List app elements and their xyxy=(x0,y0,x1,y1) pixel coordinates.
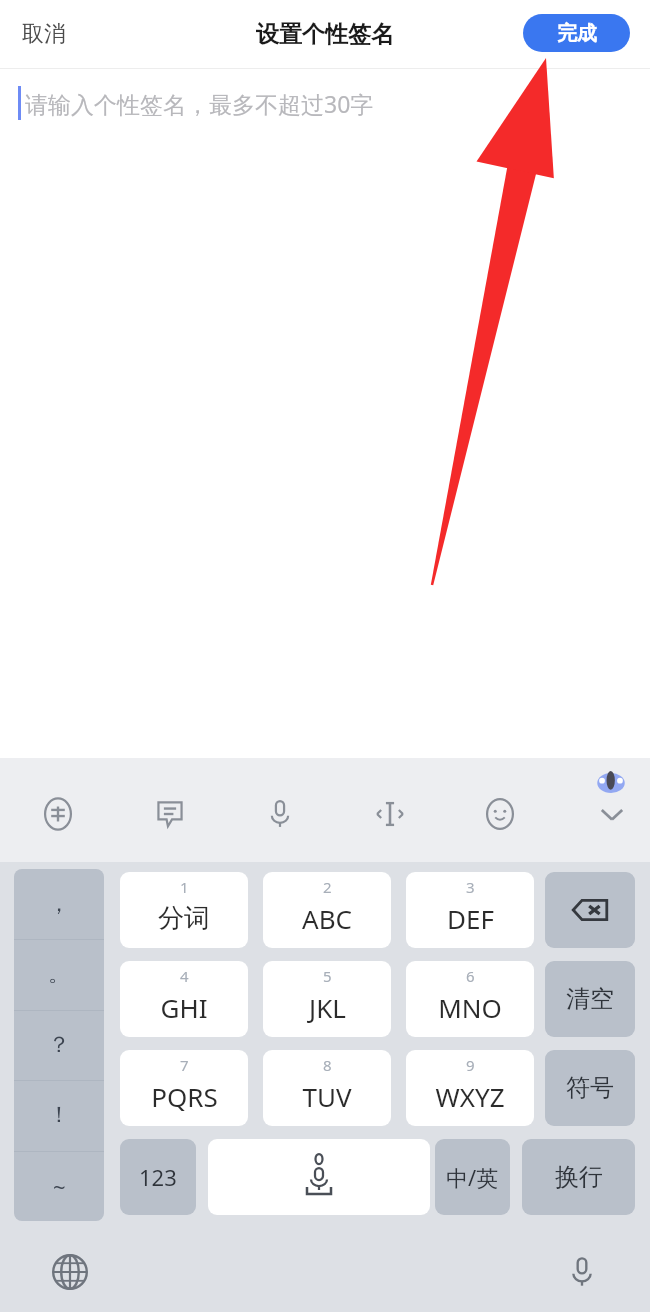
staticText: WXYZ xyxy=(435,1079,505,1114)
button[interactable]: ？ xyxy=(14,1010,104,1080)
button[interactable]: 完成 xyxy=(523,14,630,52)
button[interactable]: 换行 xyxy=(522,1139,635,1215)
button[interactable]: ， xyxy=(14,869,104,939)
staticText: 。 xyxy=(48,960,70,988)
button[interactable]: 2 xyxy=(263,872,391,948)
staticText: DEF xyxy=(447,901,494,936)
staticText: ， xyxy=(48,890,70,918)
button[interactable]: 退格 xyxy=(545,872,635,948)
button[interactable]: 9 xyxy=(406,1050,534,1126)
staticText: 123 xyxy=(139,1162,177,1192)
button[interactable]: 1 xyxy=(120,872,248,948)
staticText: PQRS xyxy=(151,1079,218,1114)
button[interactable]: 语音输入 xyxy=(560,1250,604,1294)
button[interactable]: Hide keyboard xyxy=(586,788,638,840)
button[interactable]: 清空 xyxy=(545,961,635,1037)
staticText: 取消 xyxy=(22,20,66,48)
staticText: JKL xyxy=(309,990,346,1025)
staticText: 8 xyxy=(323,1055,332,1075)
staticText: MNO xyxy=(438,990,502,1025)
staticText: ABC xyxy=(302,901,352,936)
button[interactable]: 3 xyxy=(406,872,534,948)
button[interactable]: 5 xyxy=(263,961,391,1037)
button[interactable]: 。 xyxy=(14,939,104,1009)
button[interactable]: 切换输入法 xyxy=(48,1250,92,1294)
button[interactable]: Handwriting xyxy=(32,788,84,840)
button[interactable]: Assistant xyxy=(595,766,627,798)
button[interactable]: Text tools xyxy=(144,788,196,840)
button[interactable]: 123 xyxy=(120,1139,196,1215)
staticText: 完成 xyxy=(557,21,597,46)
staticText: TUV xyxy=(302,1079,352,1114)
button[interactable]: Voice input xyxy=(254,788,306,840)
staticText: 2 xyxy=(323,877,332,897)
staticText: 中/英 xyxy=(446,1162,499,1192)
staticText: 6 xyxy=(466,966,475,986)
staticText: 3 xyxy=(466,877,475,897)
staticText: GHI xyxy=(160,990,208,1025)
staticText: 符号 xyxy=(566,1073,614,1103)
button[interactable]: 6 xyxy=(406,961,534,1037)
button[interactable]: Cursor xyxy=(364,788,416,840)
button[interactable]: 8 xyxy=(263,1050,391,1126)
staticText: 换行 xyxy=(555,1162,603,1192)
staticText: ~ xyxy=(53,1171,66,1201)
staticText: 9 xyxy=(466,1055,475,1075)
staticText: 1 xyxy=(180,877,189,897)
staticText: 请输入个性签名，最多不超过30字 xyxy=(25,88,374,119)
button[interactable]: 空格 xyxy=(208,1139,430,1215)
staticText: 7 xyxy=(180,1055,189,1075)
staticText: 5 xyxy=(323,966,332,986)
staticText: ？ xyxy=(48,1031,70,1059)
button[interactable]: ~ xyxy=(14,1151,104,1221)
button[interactable]: Emoji xyxy=(474,788,526,840)
button[interactable]: 7 xyxy=(120,1050,248,1126)
staticText: 分词 xyxy=(158,902,210,935)
button[interactable]: 符号 xyxy=(545,1050,635,1126)
staticText: ！ xyxy=(48,1101,70,1129)
staticText: 清空 xyxy=(566,984,614,1014)
staticText: 4 xyxy=(180,966,189,986)
button[interactable]: ！ xyxy=(14,1080,104,1150)
button[interactable]: 取消 xyxy=(12,14,76,54)
button[interactable]: 4 xyxy=(120,961,248,1037)
staticText: 设置个性签名 xyxy=(256,20,394,49)
button[interactable]: 中/英 xyxy=(435,1139,510,1215)
